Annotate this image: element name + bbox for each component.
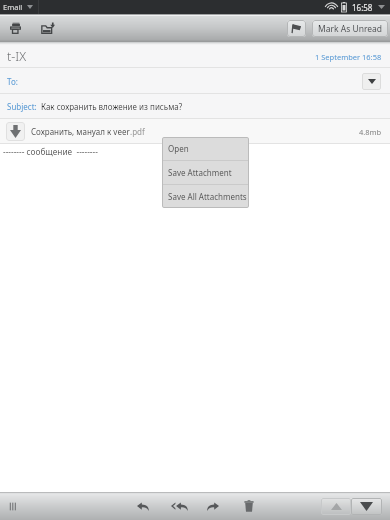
button[interactable]: Next message — [351, 498, 382, 515]
staticText: Subject: — [7, 101, 37, 112]
button[interactable]: Print — [0, 14, 31, 42]
staticText: Как сохранить вложение из письма? — [41, 101, 183, 112]
button[interactable]: Open — [162, 137, 249, 160]
staticText: To: — [7, 76, 18, 87]
button[interactable]: Reply — [126, 492, 160, 520]
staticText: Сохранить, мануал к veer — [31, 126, 130, 137]
staticText: .pdf — [130, 126, 145, 137]
staticText: 4.8mb — [359, 127, 382, 137]
button[interactable]: Save All Attachments — [162, 185, 249, 208]
staticText: Email — [3, 2, 23, 12]
button[interactable]: Previous message — [321, 498, 351, 515]
staticText: t-IX — [7, 48, 27, 65]
button[interactable]: Forward — [196, 492, 230, 520]
staticText: Open — [168, 143, 189, 154]
staticText: Mark As Unread — [318, 23, 383, 35]
staticText: Save All Attachments — [168, 191, 247, 202]
button[interactable]: Сохранить, мануал к veer — [0, 119, 390, 144]
button[interactable]: Save to folder — [31, 14, 64, 42]
staticText: -------- сообщение -------- — [3, 146, 98, 157]
button[interactable]: Flag — [287, 20, 306, 37]
button[interactable]: Expand details — [362, 73, 381, 90]
button[interactable]: Save Attachment — [162, 161, 249, 184]
staticText: Save Attachment — [168, 167, 232, 178]
button[interactable]: Reply all — [162, 492, 196, 520]
button[interactable]: Delete — [232, 492, 266, 520]
staticText: 1 September 16:58 — [315, 52, 382, 62]
staticText: 16:58 — [352, 2, 373, 13]
button[interactable]: Menu — [0, 492, 26, 520]
button[interactable]: Mark As Unread — [312, 20, 388, 37]
